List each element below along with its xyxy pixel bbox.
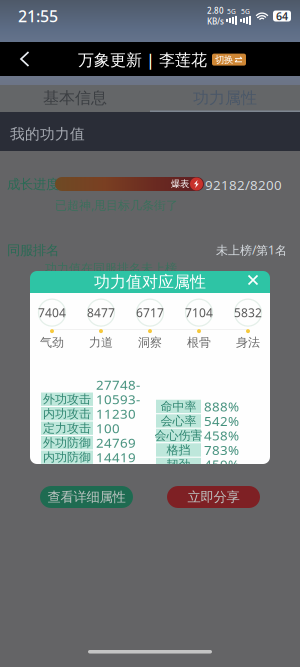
staticText: 成长进度	[7, 176, 59, 192]
staticText: 万象更新 | 李莲花	[78, 49, 207, 70]
staticText: 定力攻击	[43, 421, 91, 435]
staticText: 8477	[87, 305, 115, 321]
staticText: 14419	[96, 448, 136, 466]
staticText: 64	[276, 9, 288, 23]
staticText: 我的功力值	[10, 125, 85, 143]
staticText: 根骨	[187, 335, 211, 350]
staticText: 命中率	[160, 399, 196, 414]
staticText: 27748-	[96, 376, 140, 393]
staticText: 会心率	[160, 414, 196, 428]
staticText: 10593-	[96, 390, 140, 408]
staticText: 100	[96, 463, 120, 480]
staticText: 基本信息	[43, 88, 107, 108]
staticText: 7104	[185, 305, 213, 321]
staticText: 气劲	[40, 335, 64, 350]
button[interactable]: 功力属性	[150, 85, 300, 111]
staticText: 功力值在同服排名未上榜	[45, 261, 177, 276]
staticText: 功力属性	[193, 88, 257, 108]
button[interactable]: Back	[12, 46, 38, 72]
button[interactable]: 基本信息	[0, 85, 150, 111]
staticText: 11230	[96, 405, 136, 422]
staticText: 783%	[204, 441, 239, 459]
staticText: 7404	[38, 305, 66, 321]
staticText: 切换	[215, 54, 233, 65]
staticText: 888%	[204, 398, 239, 415]
staticText: 格挡	[166, 443, 190, 457]
staticText: 查看详细属性	[47, 489, 125, 505]
staticText: 5G	[227, 7, 236, 16]
staticText: 内功攻击	[43, 406, 91, 421]
button[interactable]: 立即分享	[167, 486, 260, 508]
staticText: KB/s	[207, 16, 224, 27]
staticText: 身法	[236, 335, 260, 350]
staticText: 92182/8200	[205, 176, 282, 194]
staticText: 未上榜/第1名	[216, 242, 287, 258]
staticText: 韧劲	[166, 457, 190, 472]
staticText: 542%	[204, 412, 239, 430]
staticText: 6717	[136, 305, 164, 321]
staticText: 5832	[234, 305, 262, 321]
staticText: 内功防御	[43, 450, 91, 464]
staticText: 力道	[89, 335, 113, 350]
staticText: 5G	[241, 7, 250, 16]
staticText: 459%	[204, 456, 239, 473]
staticText: 同服排名	[7, 242, 59, 258]
staticText: 会心伤害	[154, 428, 202, 443]
staticText: 立即分享	[187, 489, 239, 505]
staticText: 外功防御	[43, 435, 91, 450]
staticText: 24769	[96, 434, 136, 451]
staticText: 爆表	[171, 178, 189, 190]
staticText: 2.80	[207, 5, 224, 16]
staticText: 洞察	[138, 335, 162, 350]
staticText: 458%	[204, 427, 239, 444]
staticText: 外功攻击	[43, 392, 91, 406]
button[interactable]: 查看详细属性	[40, 486, 133, 508]
button[interactable]: 切换	[212, 54, 246, 66]
staticText: 100	[96, 419, 120, 437]
staticText: 功力值对应属性	[94, 272, 206, 292]
staticText: 21:55	[18, 5, 58, 27]
staticText: 已超神,甩目标几条街了	[55, 197, 178, 213]
button[interactable]: Close	[248, 275, 262, 289]
